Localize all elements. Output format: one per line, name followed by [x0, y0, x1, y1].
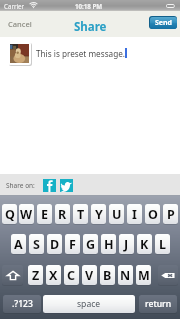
button[interactable]: J [119, 234, 134, 254]
button[interactable]: H [101, 234, 116, 254]
staticText: P [167, 206, 175, 223]
button[interactable]: K [137, 234, 152, 254]
button[interactable]: B [100, 265, 115, 285]
staticText: 10:18 PM [75, 2, 103, 10]
button[interactable]: Y [91, 204, 106, 224]
staticText: Z [32, 267, 40, 284]
button[interactable]: I [127, 204, 142, 224]
button[interactable]: space [43, 295, 135, 313]
button[interactable]: Shift [2, 265, 23, 285]
button[interactable]: E [37, 204, 52, 224]
staticText: return [145, 298, 172, 310]
staticText: .?123 [12, 298, 33, 310]
button[interactable]: O [145, 204, 160, 224]
staticText: E [41, 206, 49, 223]
button[interactable]: W [19, 204, 34, 224]
button[interactable]: X [46, 265, 61, 285]
staticText: This is preset message. [36, 48, 125, 59]
button[interactable]: F [65, 234, 80, 254]
button[interactable]: C [64, 265, 79, 285]
staticText: H [104, 236, 114, 253]
staticText: V [85, 267, 94, 284]
staticText: U [112, 206, 122, 223]
staticText: Carrier [4, 2, 25, 10]
staticText: J [124, 236, 129, 253]
staticText: N [120, 267, 131, 284]
staticText: K [140, 236, 149, 253]
button[interactable]: L [155, 234, 170, 254]
button[interactable]: N [118, 265, 133, 285]
button[interactable]: T [73, 204, 88, 224]
staticText: space [77, 298, 101, 310]
staticText: L [159, 236, 166, 253]
staticText: Cancel [8, 19, 32, 29]
button[interactable]: Attached photo [8, 42, 31, 65]
button[interactable]: Share on Facebook [43, 179, 56, 192]
button[interactable]: D [47, 234, 62, 254]
staticText: A [14, 236, 23, 253]
staticText: D [50, 236, 60, 253]
button[interactable]: Z [28, 265, 43, 285]
staticText: Share on: [6, 181, 35, 190]
button[interactable]: R [55, 204, 70, 224]
staticText: Q [5, 206, 15, 223]
staticText: X [49, 267, 58, 284]
button[interactable]: A [11, 234, 26, 254]
button[interactable]: G [83, 234, 98, 254]
staticText: G [86, 236, 96, 253]
staticText: Share [74, 19, 107, 35]
button[interactable]: P [163, 204, 178, 224]
staticText: T [77, 206, 85, 223]
button[interactable]: return [139, 295, 177, 313]
button[interactable]: Backspace [158, 265, 178, 285]
button[interactable]: S [29, 234, 44, 254]
staticText: S [33, 236, 40, 253]
button[interactable]: V [82, 265, 97, 285]
button[interactable]: Cancel [3, 14, 37, 34]
staticText: Send [155, 18, 173, 28]
button[interactable]: Share on Twitter [60, 179, 73, 192]
staticText: B [103, 267, 112, 284]
staticText: C [67, 267, 76, 284]
staticText: R [58, 206, 67, 223]
staticText: I [132, 206, 137, 223]
staticText: O [148, 206, 158, 223]
staticText: Y [95, 206, 103, 223]
button[interactable]: Send [149, 16, 177, 29]
button[interactable]: M [136, 265, 151, 285]
button[interactable]: U [109, 204, 124, 224]
button[interactable]: Q [2, 204, 17, 224]
button[interactable]: .?123 [3, 295, 41, 313]
staticText: W [20, 206, 33, 223]
staticText: M [138, 267, 150, 284]
staticText: F [69, 236, 76, 253]
